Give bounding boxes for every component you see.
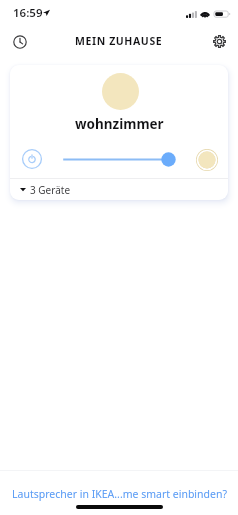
button[interactable]: Lautsprecher in IKEA...me smart einbinde…: [0, 481, 238, 506]
staticText: Lautsprecher in IKEA...me smart einbinde…: [12, 487, 227, 501]
button[interactable]: Verlauf: [4, 27, 36, 57]
button[interactable]: Lampe: [102, 73, 139, 110]
button[interactable]: Einstellungen: [203, 26, 235, 56]
staticText: wohnzimmer: [75, 115, 164, 133]
button[interactable]: Farbe: [196, 149, 218, 171]
staticText: MEIN ZUHAUSE: [75, 34, 163, 48]
staticText: 3 Geräte: [30, 183, 71, 197]
button[interactable]: 3 Geräte: [10, 179, 228, 200]
button[interactable]: Helligkeit: [58, 149, 190, 170]
staticText: 16:59: [13, 5, 43, 21]
button[interactable]: An/Aus: [19, 146, 45, 172]
